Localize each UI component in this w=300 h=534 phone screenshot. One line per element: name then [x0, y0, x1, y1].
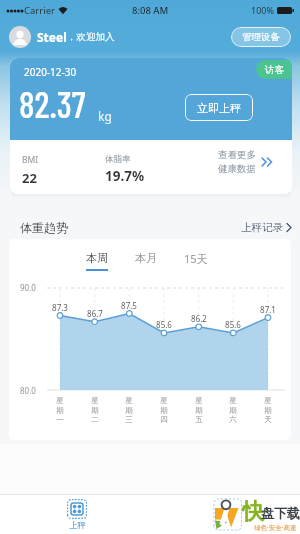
button[interactable]: 上秤: [59, 499, 95, 531]
staticText: 星 期 二: [87, 396, 103, 424]
staticText: Carrier: [24, 4, 55, 17]
staticText: BMI: [22, 154, 39, 166]
staticText: 22: [22, 169, 37, 187]
staticText: 87.3: [48, 302, 72, 313]
staticText: 85.6: [152, 319, 176, 330]
staticText: 绿色·安全·高速: [254, 523, 297, 532]
staticText: 体脂率: [105, 154, 131, 165]
staticText: 星 期 一: [52, 396, 68, 424]
button[interactable]: 本周: [86, 251, 108, 271]
staticText: 星 期 六: [225, 396, 241, 424]
staticText: 查看更多: [218, 149, 256, 161]
staticText: 健康数据: [218, 163, 256, 175]
button[interactable]: 上秤记录: [241, 221, 292, 234]
staticText: 本周: [86, 251, 108, 265]
staticText: kg: [98, 108, 112, 124]
staticText: 86.7: [83, 308, 107, 319]
staticText: 上秤: [69, 520, 86, 531]
staticText: 82.37: [19, 82, 86, 125]
staticText: 快: [242, 498, 264, 526]
button[interactable]: 15天: [184, 251, 208, 266]
staticText: 管理设备: [242, 31, 280, 43]
staticText: 87.5: [117, 300, 141, 311]
button[interactable]: 立即上秤: [185, 94, 253, 121]
staticText: 盘下载: [261, 505, 300, 521]
staticText: 星 期 五: [191, 396, 207, 424]
staticText: 100%: [251, 4, 274, 16]
button[interactable]: 查看更多: [218, 149, 273, 175]
staticText: 上秤记录: [241, 221, 283, 234]
button[interactable]: 本月: [135, 251, 157, 265]
staticText: 星 期 天: [260, 396, 276, 424]
staticText: 体重趋势: [20, 220, 68, 235]
staticText: 90.0: [20, 282, 36, 293]
button[interactable]: 管理设备: [231, 27, 291, 47]
staticText: 星 期 三: [121, 396, 137, 424]
staticText: 80.0: [20, 385, 36, 396]
staticText: 立即上秤: [197, 101, 241, 115]
button[interactable]: [9, 26, 31, 48]
staticText: 8:08 AM: [132, 4, 169, 17]
staticText: 星 期 四: [156, 396, 172, 424]
staticText: 2020-12-30: [24, 65, 77, 79]
staticText: Steel: [37, 29, 67, 45]
staticText: 19.7%: [105, 167, 145, 185]
staticText: 87.1: [256, 304, 280, 315]
staticText: ，欢迎加入: [67, 31, 115, 43]
staticText: 85.6: [221, 319, 245, 330]
staticText: 访客: [265, 64, 284, 76]
button[interactable]: 访客: [256, 60, 292, 79]
staticText: 86.2: [187, 313, 211, 324]
